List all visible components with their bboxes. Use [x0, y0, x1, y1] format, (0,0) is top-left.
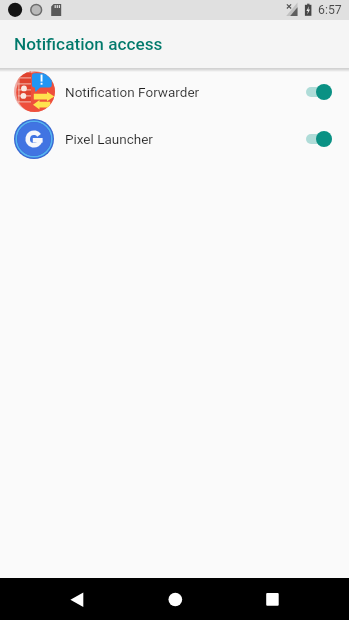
button[interactable]: Notification Forwarder: [0, 68, 349, 115]
button[interactable]: Recent apps: [260, 586, 286, 612]
staticText: Pixel Launcher: [65, 131, 153, 147]
button[interactable]: Toggle notification access: [306, 82, 332, 102]
staticText: Notification access: [14, 34, 163, 54]
staticText: 6:57: [318, 3, 342, 17]
button[interactable]: Home: [162, 586, 188, 612]
button[interactable]: Back: [64, 586, 90, 612]
staticText: Notification Forwarder: [65, 84, 200, 100]
button[interactable]: Toggle notification access: [306, 129, 332, 149]
button[interactable]: Pixel Launcher: [0, 115, 349, 162]
